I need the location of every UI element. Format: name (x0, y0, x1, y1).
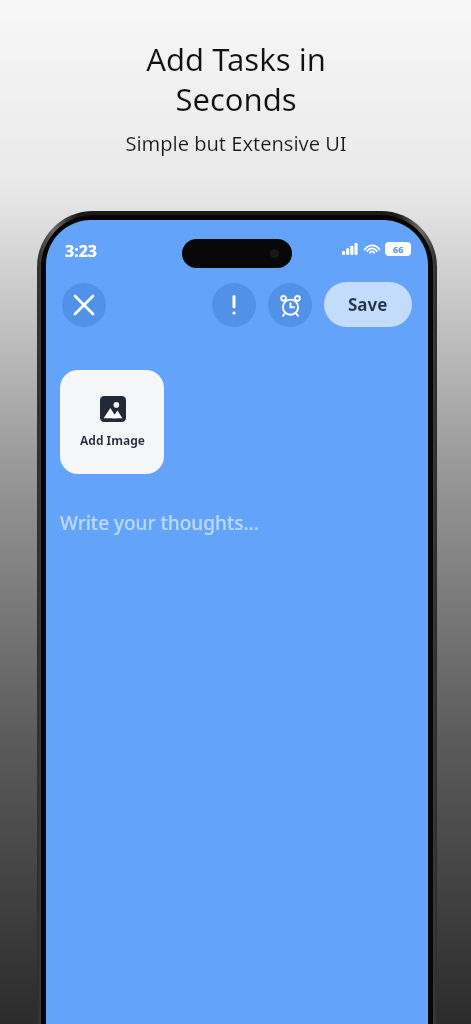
button[interactable]: Close (62, 283, 106, 327)
button[interactable]: Priority (212, 283, 256, 327)
staticText: 66 (393, 243, 404, 255)
button[interactable]: Set reminder (268, 283, 312, 327)
staticText: Add Image (80, 432, 145, 448)
staticText: Add Tasks in Seconds (146, 38, 326, 120)
staticText: 3:23 (65, 240, 97, 262)
staticText: Simple but Extensive UI (125, 130, 347, 157)
staticText: Save (348, 293, 388, 316)
button[interactable]: Add Image (60, 370, 164, 474)
button[interactable]: Save (324, 282, 412, 327)
button[interactable]: Write your thoughts... (60, 506, 428, 540)
